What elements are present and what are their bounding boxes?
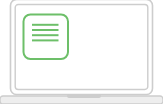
button[interactable]: Laptop illustration [0, 0, 163, 104]
